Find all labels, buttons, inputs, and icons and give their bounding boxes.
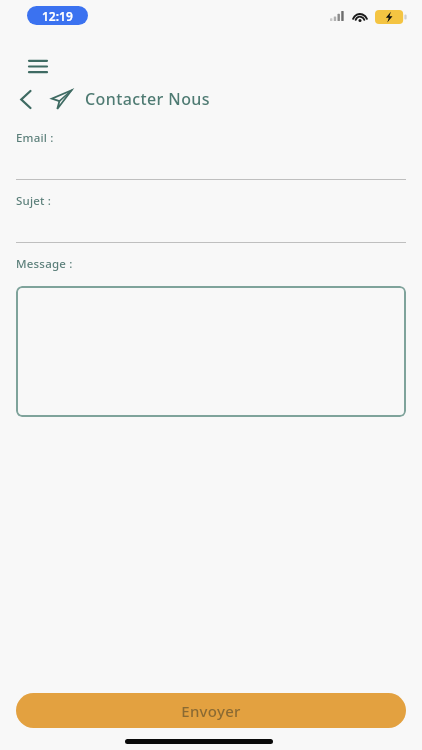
button[interactable]: Menu — [22, 50, 54, 82]
staticText: Sujet : — [16, 193, 52, 209]
button[interactable]: Back — [12, 86, 38, 112]
staticText: Message : — [16, 256, 73, 272]
button[interactable]: Send — [47, 85, 75, 113]
button[interactable] — [16, 286, 406, 417]
staticText: 12:19 — [42, 8, 73, 24]
button[interactable]: Envoyer — [16, 693, 406, 728]
staticText: Envoyer — [181, 701, 241, 721]
staticText: Email : — [16, 130, 54, 146]
staticText: Contacter Nous — [85, 88, 210, 110]
